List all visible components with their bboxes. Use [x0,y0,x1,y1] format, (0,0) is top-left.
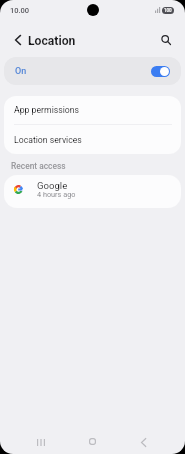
staticText: App permissions [14,105,80,115]
button[interactable]: Home [81,430,103,452]
button[interactable]: Google [4,175,181,208]
button[interactable]: Back [132,431,154,453]
staticText: Location [28,34,76,48]
staticText: 100 [164,8,172,13]
button[interactable]: Back [7,29,29,51]
staticText: Google [37,180,68,191]
button[interactable]: On [4,57,181,85]
staticText: Location services [14,135,82,145]
staticText: 4 hours ago [37,190,76,199]
button[interactable]: Search [155,29,177,51]
staticText: On [15,66,27,77]
staticText: 10.00 [10,6,30,15]
button[interactable]: Location services [4,125,181,154]
button[interactable]: Recent apps [30,431,52,453]
button[interactable]: App permissions [4,96,181,124]
staticText: Recent access [11,161,66,171]
